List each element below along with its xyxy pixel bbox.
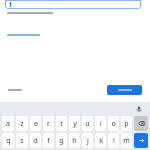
button[interactable]: t [56,116,67,131]
staticText: f [47,136,50,146]
button[interactable]: p [121,116,132,131]
staticText: i [100,119,102,129]
staticText: k [99,136,103,146]
button[interactable]: Backspace [134,116,148,131]
button[interactable]: y [69,116,80,131]
button[interactable]: d [30,133,41,148]
staticText: t [60,119,63,129]
staticText: o [111,119,116,129]
button[interactable]: e [30,116,41,131]
button[interactable]: Enter [134,133,148,148]
button[interactable]: h [69,133,80,148]
button[interactable]: f [43,133,54,148]
button[interactable]: z [16,116,28,131]
staticText: g [59,136,64,146]
staticText: a [6,119,10,129]
staticText: j [87,136,89,146]
button[interactable]: o [108,116,119,131]
button[interactable]: q [2,133,14,148]
staticText: e [34,119,38,129]
button[interactable]: j [82,133,93,148]
button[interactable] [107,85,142,95]
staticText: h [72,136,77,146]
staticText: s [20,136,24,146]
button[interactable] [7,32,40,38]
button[interactable]: Voice input [135,105,143,113]
staticText: z [20,119,24,129]
button[interactable]: i [95,116,106,131]
button[interactable]: l [108,133,119,148]
button[interactable] [5,0,141,9]
button[interactable]: r [43,116,54,131]
button[interactable]: m [121,133,132,148]
button[interactable]: a [2,116,14,131]
staticText: r [47,119,50,129]
staticText: m [123,136,130,146]
button[interactable]: u [82,116,93,131]
button[interactable]: s [16,133,28,148]
button[interactable]: g [56,133,67,148]
staticText: l [113,136,115,146]
button[interactable]: k [95,133,106,148]
button[interactable] [7,86,23,94]
staticText: u [85,119,90,129]
staticText: y [73,119,77,129]
staticText: p [124,119,129,129]
staticText: q [6,136,11,146]
staticText: d [33,136,38,146]
